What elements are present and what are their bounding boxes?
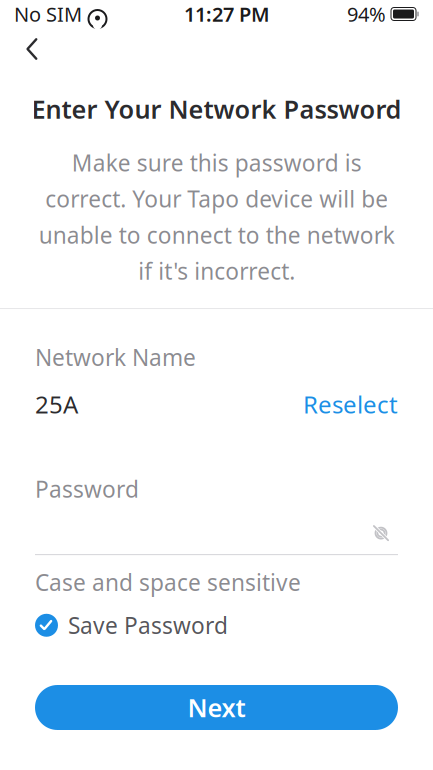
staticText: 11:27 PM [184, 1, 270, 27]
staticText: No SIM [14, 1, 82, 27]
staticText: Save Password [68, 610, 228, 640]
staticText: Enter Your Network Password [31, 92, 401, 126]
staticText: Make sure this password is correct. Your… [38, 148, 394, 286]
button[interactable]: Next [35, 685, 398, 730]
staticText: Network Name [35, 342, 196, 372]
staticText: 94% [347, 1, 386, 27]
button[interactable]: Reselect [291, 384, 398, 424]
staticText: Next [187, 691, 245, 724]
staticText: Reselect [303, 388, 398, 420]
button[interactable]: Show password [364, 518, 398, 548]
staticText: 25A [35, 388, 78, 420]
button[interactable]: Save Password [35, 607, 398, 643]
button[interactable]: Back [10, 27, 54, 71]
staticText: Password [35, 474, 139, 504]
staticText: Case and space sensitive [35, 567, 301, 597]
